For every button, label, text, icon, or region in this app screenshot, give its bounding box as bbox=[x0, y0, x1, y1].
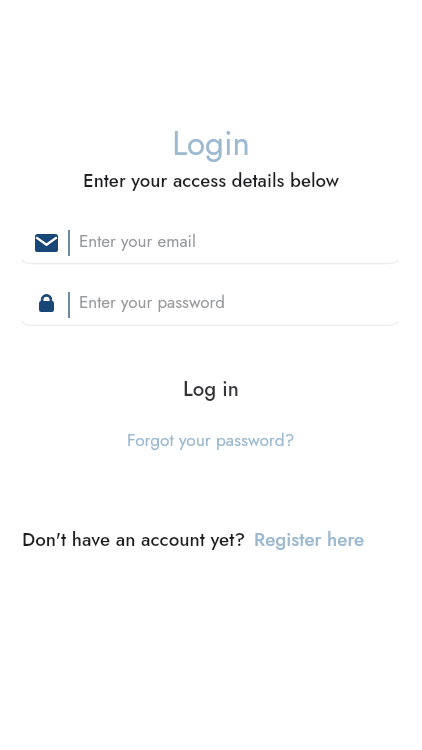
staticText: Don't have an account yet? bbox=[22, 526, 251, 553]
button[interactable]: Log in bbox=[136, 368, 286, 408]
staticText: Log in bbox=[183, 374, 239, 403]
staticText: Enter your access details below bbox=[0, 167, 422, 194]
button[interactable]: Enter your password bbox=[22, 286, 398, 328]
staticText: Login bbox=[0, 120, 422, 168]
staticText: Register here bbox=[254, 526, 365, 553]
staticText: Enter your email bbox=[79, 229, 196, 254]
button[interactable]: Enter your email bbox=[22, 224, 398, 266]
button[interactable]: Register here bbox=[254, 526, 365, 553]
button[interactable]: Forgot your password? bbox=[101, 422, 321, 456]
staticText: Forgot your password? bbox=[127, 427, 295, 452]
staticText: Enter your password bbox=[79, 290, 225, 315]
